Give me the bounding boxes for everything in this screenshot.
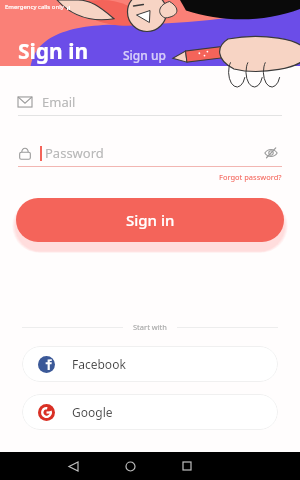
staticText: Sign up xyxy=(123,47,166,63)
staticText: Sign in xyxy=(126,210,175,230)
button[interactable]: Sign in xyxy=(18,37,89,66)
button[interactable]: Back xyxy=(59,452,87,480)
staticText: Facebook xyxy=(72,356,126,372)
button[interactable]: Show password xyxy=(260,142,282,164)
staticText: Start with xyxy=(133,322,167,332)
button[interactable]: Recents xyxy=(173,452,201,480)
staticText: Password xyxy=(45,144,104,162)
button[interactable]: Email xyxy=(18,89,282,115)
button[interactable]: Password xyxy=(18,140,282,166)
staticText: Google xyxy=(72,404,113,420)
staticText: Emergency calls only xyxy=(5,3,64,11)
button[interactable]: Forgot password? xyxy=(219,172,282,182)
staticText: Email xyxy=(42,93,76,111)
button[interactable]: Sign in xyxy=(16,198,284,242)
staticText: Sign in xyxy=(18,37,89,66)
button[interactable]: Google xyxy=(22,394,278,430)
button[interactable]: Facebook xyxy=(22,346,278,382)
button[interactable]: Sign up xyxy=(123,47,166,63)
staticText: Forgot password? xyxy=(219,172,282,182)
button[interactable]: Home xyxy=(116,452,144,480)
